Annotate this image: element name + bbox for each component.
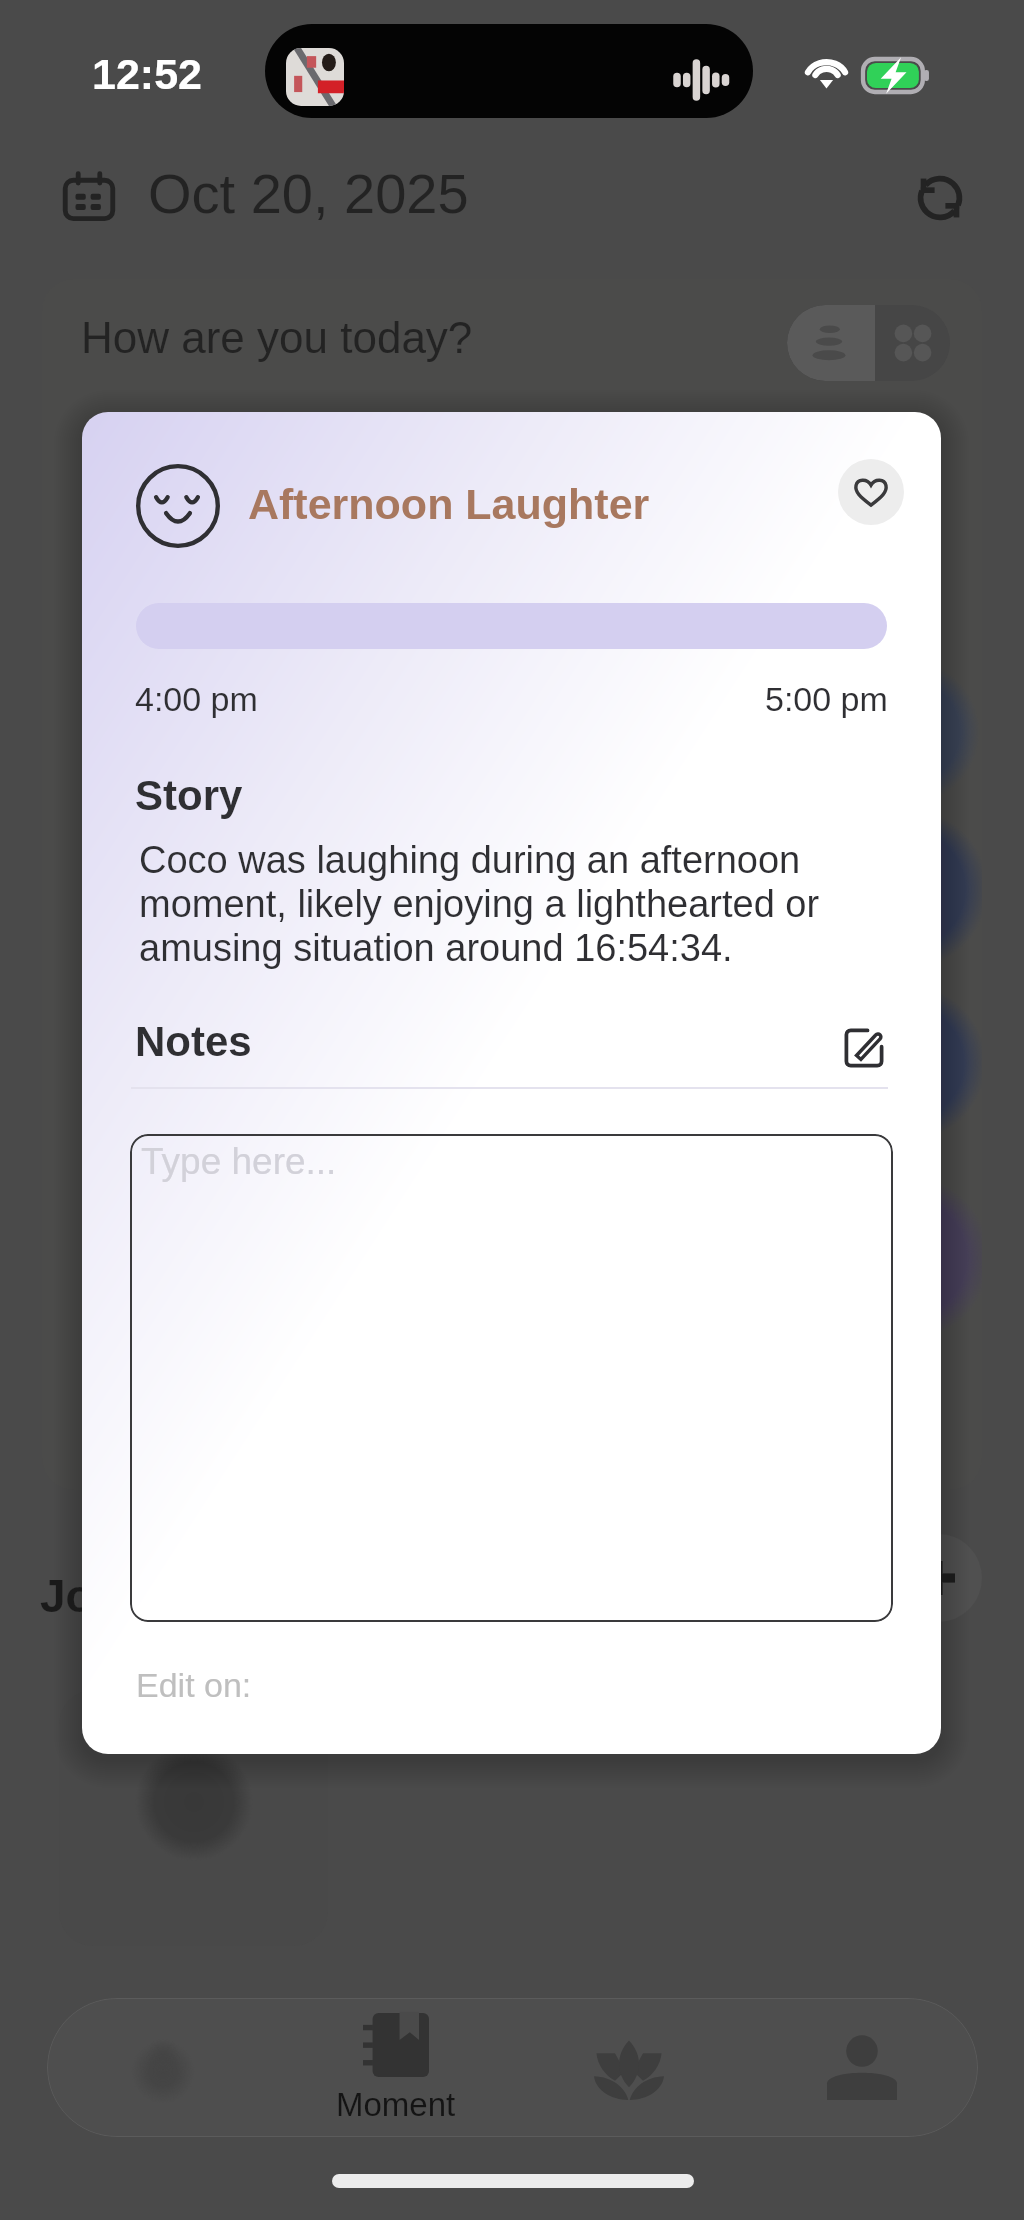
staticText: Coco was laughing during an afternoon mo… <box>139 839 829 969</box>
staticText: Journal <box>40 1570 207 1621</box>
button[interactable]: Stones view <box>787 305 875 381</box>
other: Add entry <box>921 1561 955 1595</box>
staticText: How are you today? <box>81 313 473 362</box>
button[interactable]: Grid view <box>875 305 950 381</box>
other: Calendar <box>62 170 118 224</box>
button[interactable]: Add entry <box>894 1534 982 1622</box>
staticText: 5:00 pm <box>765 680 888 718</box>
other: Wellness <box>594 2036 664 2100</box>
button[interactable]: Profile <box>745 1998 978 2137</box>
staticText: Moment <box>336 2086 456 2123</box>
button[interactable]: Edit notes <box>836 1019 894 1077</box>
other: Refresh <box>913 171 967 225</box>
staticText: Type here... <box>141 1141 337 1182</box>
button[interactable] <box>59 1690 328 1946</box>
other: Pet <box>128 2036 198 2100</box>
button[interactable]: Calendar <box>54 163 126 231</box>
button[interactable]: Favourite <box>838 459 904 525</box>
staticText: Story <box>135 772 243 819</box>
staticText: 4:00 pm <box>135 680 258 718</box>
staticText: Notes <box>135 1018 252 1065</box>
staticText: Edit on: <box>136 1666 252 1704</box>
other: Profile <box>827 2036 897 2100</box>
button[interactable]: Moment <box>279 1998 512 2137</box>
other: Edit notes <box>842 1026 888 1070</box>
staticText: 12:52 <box>92 50 202 98</box>
button[interactable]: Wellness <box>512 1998 745 2137</box>
other: Favourite <box>854 477 888 507</box>
staticText: Oct 20, 2025 <box>148 162 469 225</box>
staticText: Afternoon Laughter <box>248 480 650 528</box>
button[interactable]: Refresh <box>904 162 976 234</box>
other: Stones view <box>811 323 851 363</box>
button[interactable]: Type here... <box>130 1134 893 1622</box>
other: Grid view <box>893 323 933 363</box>
